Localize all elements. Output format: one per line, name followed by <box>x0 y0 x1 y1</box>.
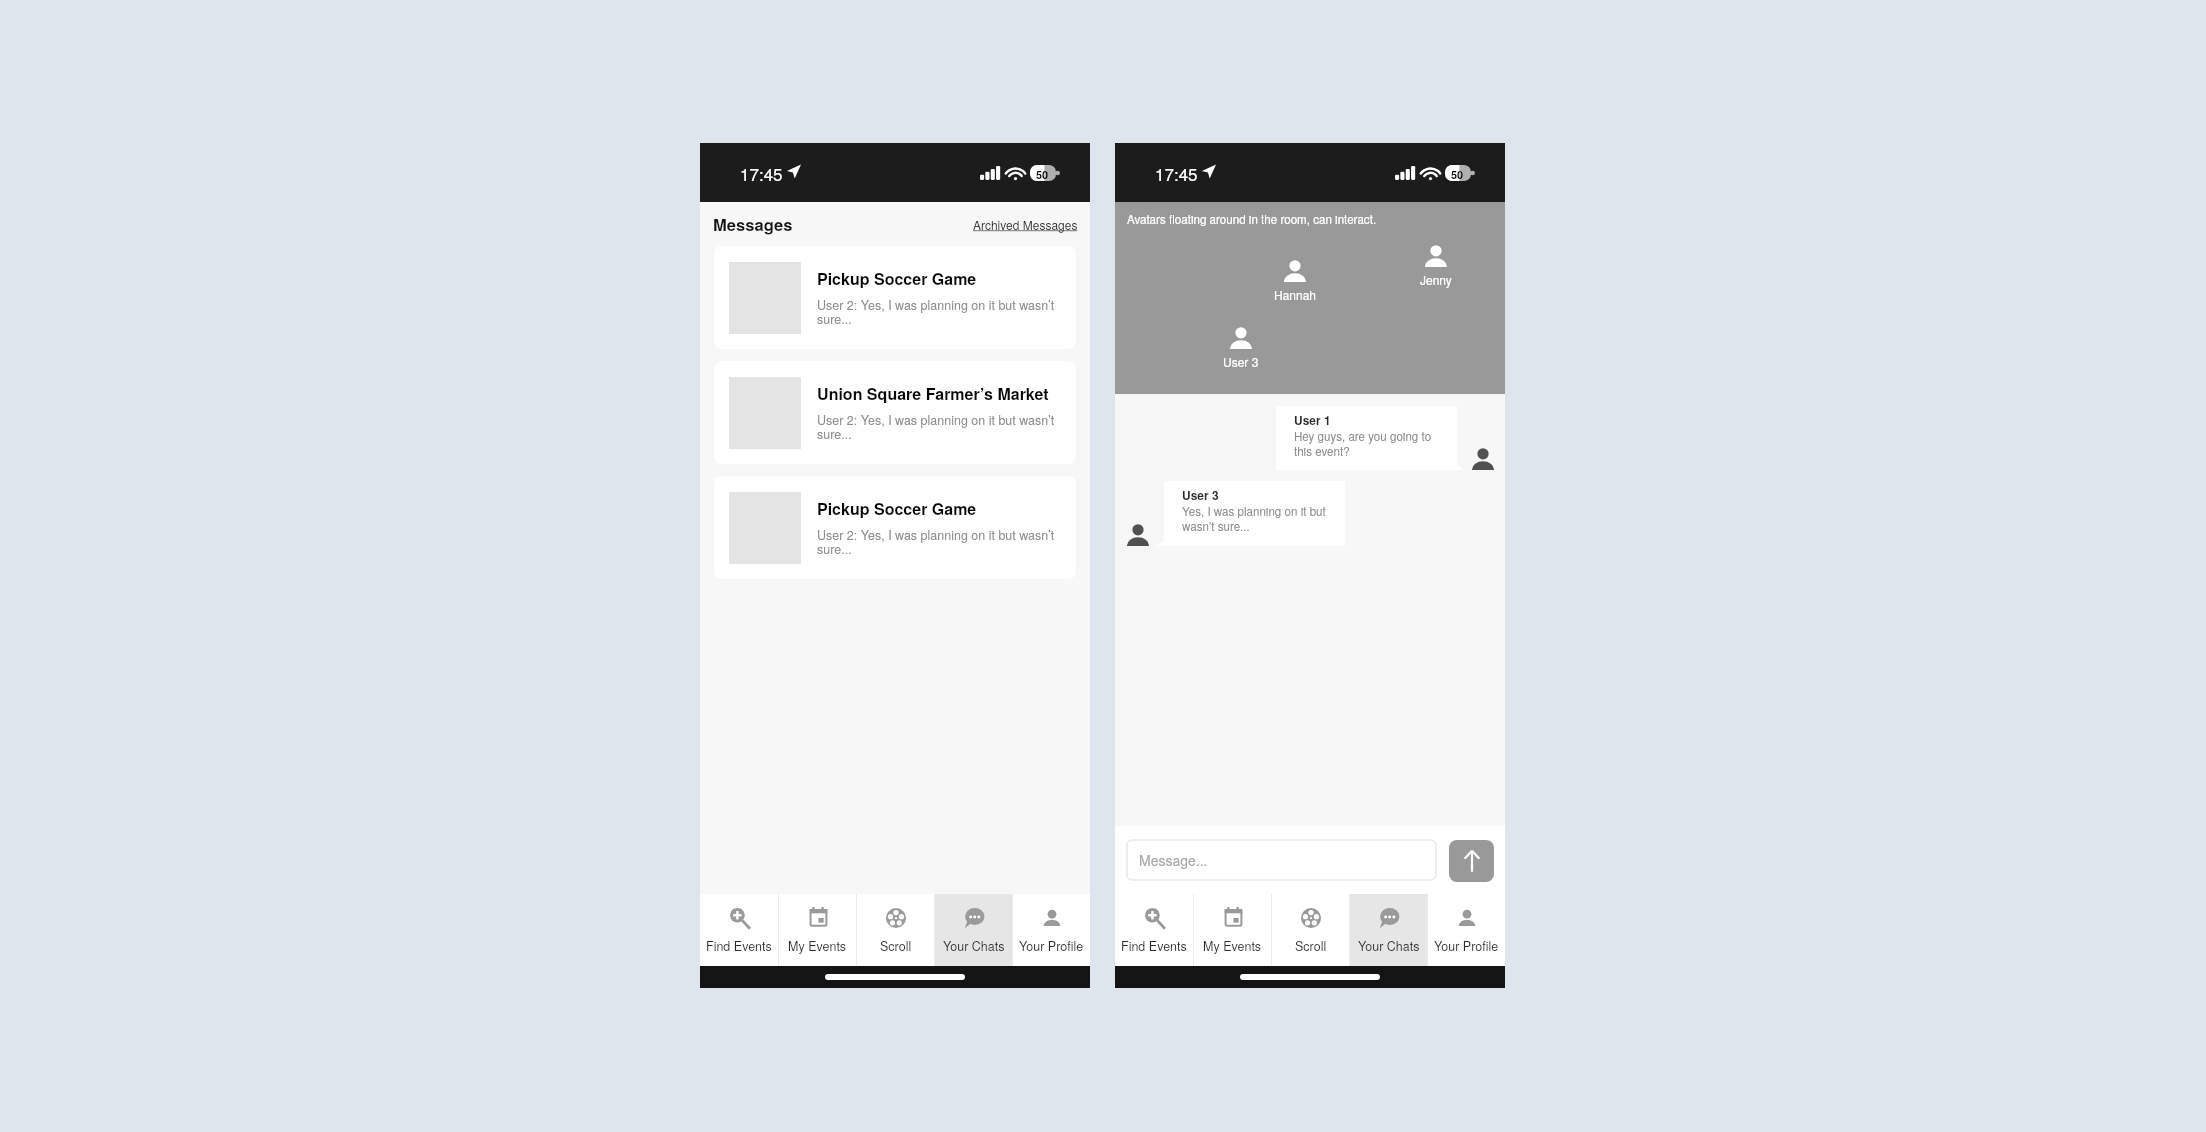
staticText: Find Events <box>706 937 772 955</box>
staticText: Message... <box>1139 850 1208 870</box>
staticText: Avatars floating around in the room, can… <box>1127 211 1377 228</box>
staticText: User 3 <box>1182 486 1219 503</box>
button[interactable]: User 3 <box>1164 481 1345 546</box>
button[interactable]: Send message <box>1449 840 1494 882</box>
staticText: 17:45 <box>1155 161 1198 185</box>
staticText: My Events <box>788 937 847 955</box>
staticText: Archived Messages <box>973 216 1078 233</box>
button[interactable]: Pickup Soccer Game <box>714 476 1076 579</box>
staticText: User 3 <box>1223 353 1259 370</box>
button[interactable]: My Events <box>779 894 856 966</box>
staticText: Find Events <box>1121 937 1187 955</box>
button[interactable]: User 1 <box>1276 406 1457 470</box>
button[interactable]: Your Profile <box>1013 894 1090 966</box>
staticText: Your Profile <box>1019 937 1084 955</box>
staticText: User 2: Yes, I was planning on it but wa… <box>817 411 1070 443</box>
staticText: Jenny <box>1420 271 1452 288</box>
staticText: Union Square Farmer’s Market <box>817 382 1049 405</box>
staticText: Your Chats <box>943 937 1005 955</box>
staticText: 17:45 <box>740 161 783 185</box>
staticText: Your Profile <box>1434 937 1499 955</box>
button[interactable]: Your Chats <box>1350 894 1427 966</box>
staticText: Scroll <box>1295 937 1327 955</box>
staticText: Pickup Soccer Game <box>817 497 977 520</box>
staticText: User 1 <box>1294 411 1331 428</box>
button[interactable]: Scroll <box>1272 894 1349 966</box>
button[interactable]: Your Chats <box>935 894 1012 966</box>
staticText: Messages <box>713 212 793 236</box>
staticText: User 2: Yes, I was planning on it but wa… <box>817 296 1070 328</box>
staticText: Hannah <box>1274 286 1317 303</box>
staticText: 50 <box>1036 167 1049 183</box>
staticText: Scroll <box>880 937 912 955</box>
staticText: 50 <box>1451 167 1464 183</box>
button[interactable]: My Events <box>1194 894 1271 966</box>
button[interactable]: Archived Messages <box>973 216 1078 233</box>
staticText: My Events <box>1203 937 1262 955</box>
button[interactable]: Scroll <box>857 894 934 966</box>
button[interactable]: Message... <box>1127 840 1436 880</box>
button[interactable]: Union Square Farmer’s Market <box>714 361 1076 464</box>
staticText: User 2: Yes, I was planning on it but wa… <box>817 526 1070 558</box>
button[interactable]: Your Profile <box>1428 894 1505 966</box>
button[interactable]: Find Events <box>700 894 778 966</box>
staticText: Hey guys, are you going to this event? <box>1294 428 1439 459</box>
staticText: Your Chats <box>1358 937 1420 955</box>
button[interactable]: Find Events <box>1115 894 1193 966</box>
button[interactable]: Pickup Soccer Game <box>714 246 1076 349</box>
staticText: Yes, I was planning on it but wasn’t sur… <box>1182 503 1327 534</box>
staticText: Pickup Soccer Game <box>817 267 977 290</box>
